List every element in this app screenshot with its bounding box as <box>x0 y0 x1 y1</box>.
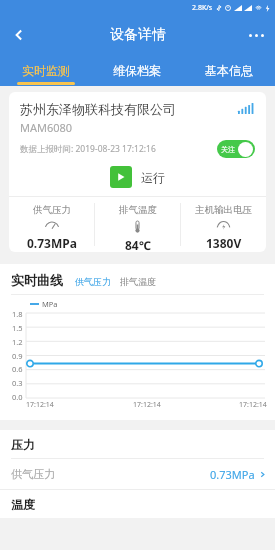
staticText: MAM6080 <box>20 120 73 135</box>
staticText: 维保档案 <box>113 63 161 78</box>
staticText: 0.9 <box>12 351 23 361</box>
button[interactable]: 供气压力 <box>73 275 113 288</box>
staticText: 1.8 <box>12 309 23 319</box>
staticText: 17:12:14 <box>133 400 161 410</box>
staticText: 供气压力 <box>33 204 71 216</box>
staticText: 1.2 <box>12 337 23 347</box>
staticText: 0.73MPa <box>210 467 255 482</box>
staticText: 苏州东泽物联科技有限公司 <box>20 101 238 117</box>
staticText: 0.6 <box>12 364 23 374</box>
staticText: 运行 <box>141 170 165 185</box>
staticText: 基本信息 <box>205 63 253 78</box>
staticText: 供气压力 <box>75 276 111 287</box>
button[interactable]: 实时监测 <box>0 54 91 86</box>
staticText: 1.5 <box>12 323 23 333</box>
staticText: 排气温度 <box>119 204 157 216</box>
button[interactable]: 供气压力 <box>0 459 275 489</box>
staticText: 实时曲线 <box>11 272 63 288</box>
staticText: 压力 <box>11 437 35 452</box>
staticText: 温度 <box>11 497 35 512</box>
button[interactable]: 排气温度 <box>95 197 180 252</box>
staticText: 0.73MPa <box>27 235 77 251</box>
button[interactable]: 排气温度 <box>118 275 158 288</box>
button[interactable]: Back <box>6 22 32 48</box>
staticText: 2.8K/s <box>192 3 213 13</box>
button[interactable]: 供气压力 <box>9 197 94 252</box>
staticText: 设备详情 <box>110 26 166 44</box>
staticText: 主机输出电压 <box>195 204 252 216</box>
staticText: 供气压力 <box>11 467 210 481</box>
staticText: 数据上报时间: 2019-08-23 17:12:16 <box>20 143 217 155</box>
staticText: MPa <box>42 299 58 309</box>
button[interactable]: 基本信息 <box>183 54 275 86</box>
staticText: 0.3 <box>12 378 23 388</box>
button[interactable]: 维保档案 <box>91 54 183 86</box>
staticText: 17:12:14 <box>239 400 267 410</box>
button[interactable]: Run <box>110 166 132 188</box>
staticText: 1380V <box>206 235 242 251</box>
staticText: 0.0 <box>12 392 23 402</box>
button[interactable]: 主机输出电压 <box>181 197 266 252</box>
staticText: 实时监测 <box>22 63 70 78</box>
staticText: 关注 <box>221 145 235 154</box>
button[interactable]: 关注 <box>217 140 255 158</box>
staticText: 84℃ <box>125 237 151 252</box>
staticText: 排气温度 <box>120 276 156 287</box>
button[interactable]: More options <box>243 22 269 48</box>
staticText: 17:12:14 <box>26 400 54 410</box>
